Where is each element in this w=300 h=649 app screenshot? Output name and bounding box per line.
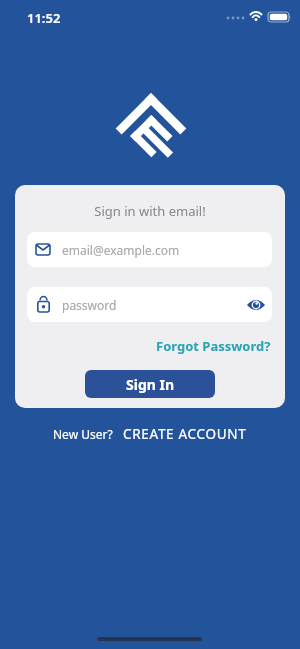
button[interactable]: Forgot Password? — [156, 337, 271, 355]
button[interactable]: email@example.com — [27, 232, 272, 267]
button[interactable]: Sign In — [85, 370, 215, 398]
button[interactable]: password — [27, 287, 272, 322]
staticText: CREATE ACCOUNT — [123, 425, 247, 443]
staticText: New User? — [53, 426, 113, 442]
staticText: 11:52 — [27, 9, 61, 27]
staticText: email@example.com — [62, 242, 180, 258]
staticText: password — [62, 297, 117, 313]
button[interactable] — [247, 298, 265, 312]
staticText: Sign In — [126, 375, 175, 394]
button[interactable]: New User? — [0, 425, 300, 443]
staticText: Sign in with email! — [15, 202, 285, 220]
